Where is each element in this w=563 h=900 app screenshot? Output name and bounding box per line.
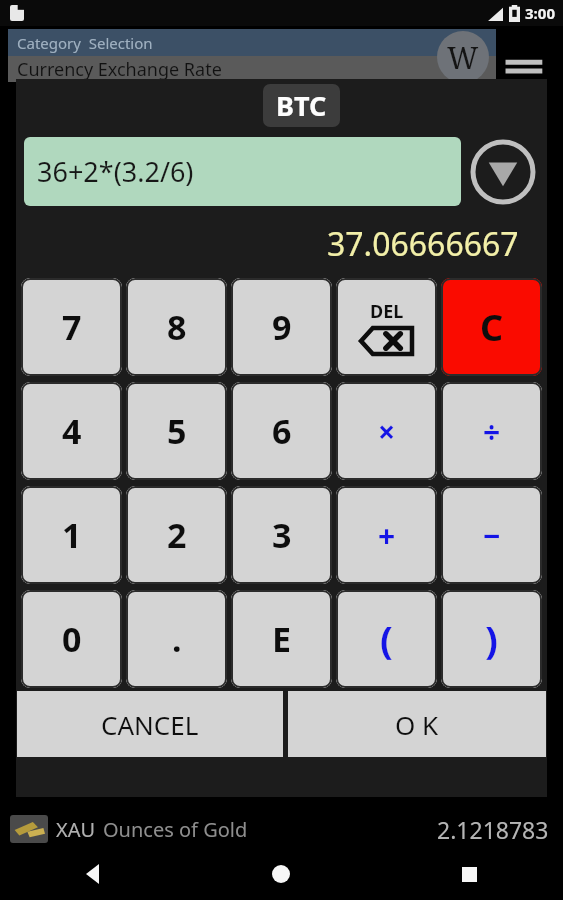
button[interactable]: O K xyxy=(288,691,546,757)
staticText: Currency Exchange Rate xyxy=(17,57,222,82)
staticText: 6 xyxy=(272,408,292,454)
button[interactable]: 4 xyxy=(21,382,122,480)
staticText: 2.1218783 xyxy=(437,814,549,845)
staticText: E xyxy=(272,616,292,662)
button[interactable]: Menu xyxy=(500,52,546,86)
staticText: − xyxy=(483,515,501,556)
button[interactable]: E xyxy=(231,590,332,688)
staticText: + xyxy=(378,515,396,556)
button[interactable]: . xyxy=(126,590,227,688)
button[interactable]: 3 xyxy=(231,486,332,584)
staticText: 0 xyxy=(62,616,82,662)
staticText: W xyxy=(447,37,479,78)
staticText: Ounces of Gold xyxy=(103,816,248,843)
staticText: CANCEL xyxy=(101,707,199,742)
button[interactable]: 5 xyxy=(126,382,227,480)
button[interactable]: Show history xyxy=(470,139,536,205)
staticText: 8 xyxy=(167,304,187,350)
staticText: 1 xyxy=(62,512,82,558)
staticText: 9 xyxy=(272,304,292,350)
button[interactable]: ( xyxy=(336,590,437,688)
staticText: 3 xyxy=(272,512,292,558)
staticText: 5 xyxy=(167,408,187,454)
staticText: 37.06666667 xyxy=(327,222,519,266)
staticText: 36+2*(3.2/6) xyxy=(37,153,194,190)
button[interactable]: Back xyxy=(0,848,187,900)
staticText: 3:00 xyxy=(525,3,555,23)
staticText: C xyxy=(480,303,504,352)
button[interactable]: + xyxy=(336,486,437,584)
button[interactable]: × xyxy=(336,382,437,480)
button[interactable]: 0 xyxy=(21,590,122,688)
button[interactable]: 9 xyxy=(231,278,332,376)
button[interactable]: − xyxy=(441,486,542,584)
staticText: 2 xyxy=(167,512,187,558)
button[interactable]: 36+2*(3.2/6) xyxy=(24,137,461,206)
button[interactable]: 8 xyxy=(126,278,227,376)
button[interactable]: ÷ xyxy=(441,382,542,480)
button[interactable]: C xyxy=(441,278,542,376)
staticText: DEL xyxy=(370,299,404,324)
staticText: 4 xyxy=(62,408,82,454)
button[interactable]: 2 xyxy=(126,486,227,584)
button[interactable]: 1 xyxy=(21,486,122,584)
button[interactable]: Wikipedia xyxy=(437,31,489,83)
staticText: × xyxy=(378,411,396,452)
staticText: ( xyxy=(380,613,393,665)
button[interactable]: BTC xyxy=(263,84,340,127)
staticText: O K xyxy=(395,707,439,742)
button[interactable]: Recent apps xyxy=(375,848,563,900)
staticText: Category Selection xyxy=(17,33,153,53)
button[interactable]: 7 xyxy=(21,278,122,376)
button[interactable]: Home xyxy=(187,848,375,900)
staticText: ) xyxy=(485,613,498,665)
button[interactable]: 6 xyxy=(231,382,332,480)
button[interactable]: Delete xyxy=(336,278,437,376)
button[interactable]: XAU xyxy=(0,811,563,847)
button[interactable]: CANCEL xyxy=(17,691,283,757)
staticText: XAU xyxy=(56,816,96,843)
staticText: . xyxy=(172,616,182,662)
staticText: BTC xyxy=(276,87,327,124)
staticText: 7 xyxy=(62,304,82,350)
staticText: ÷ xyxy=(483,411,501,452)
button[interactable]: ) xyxy=(441,590,542,688)
